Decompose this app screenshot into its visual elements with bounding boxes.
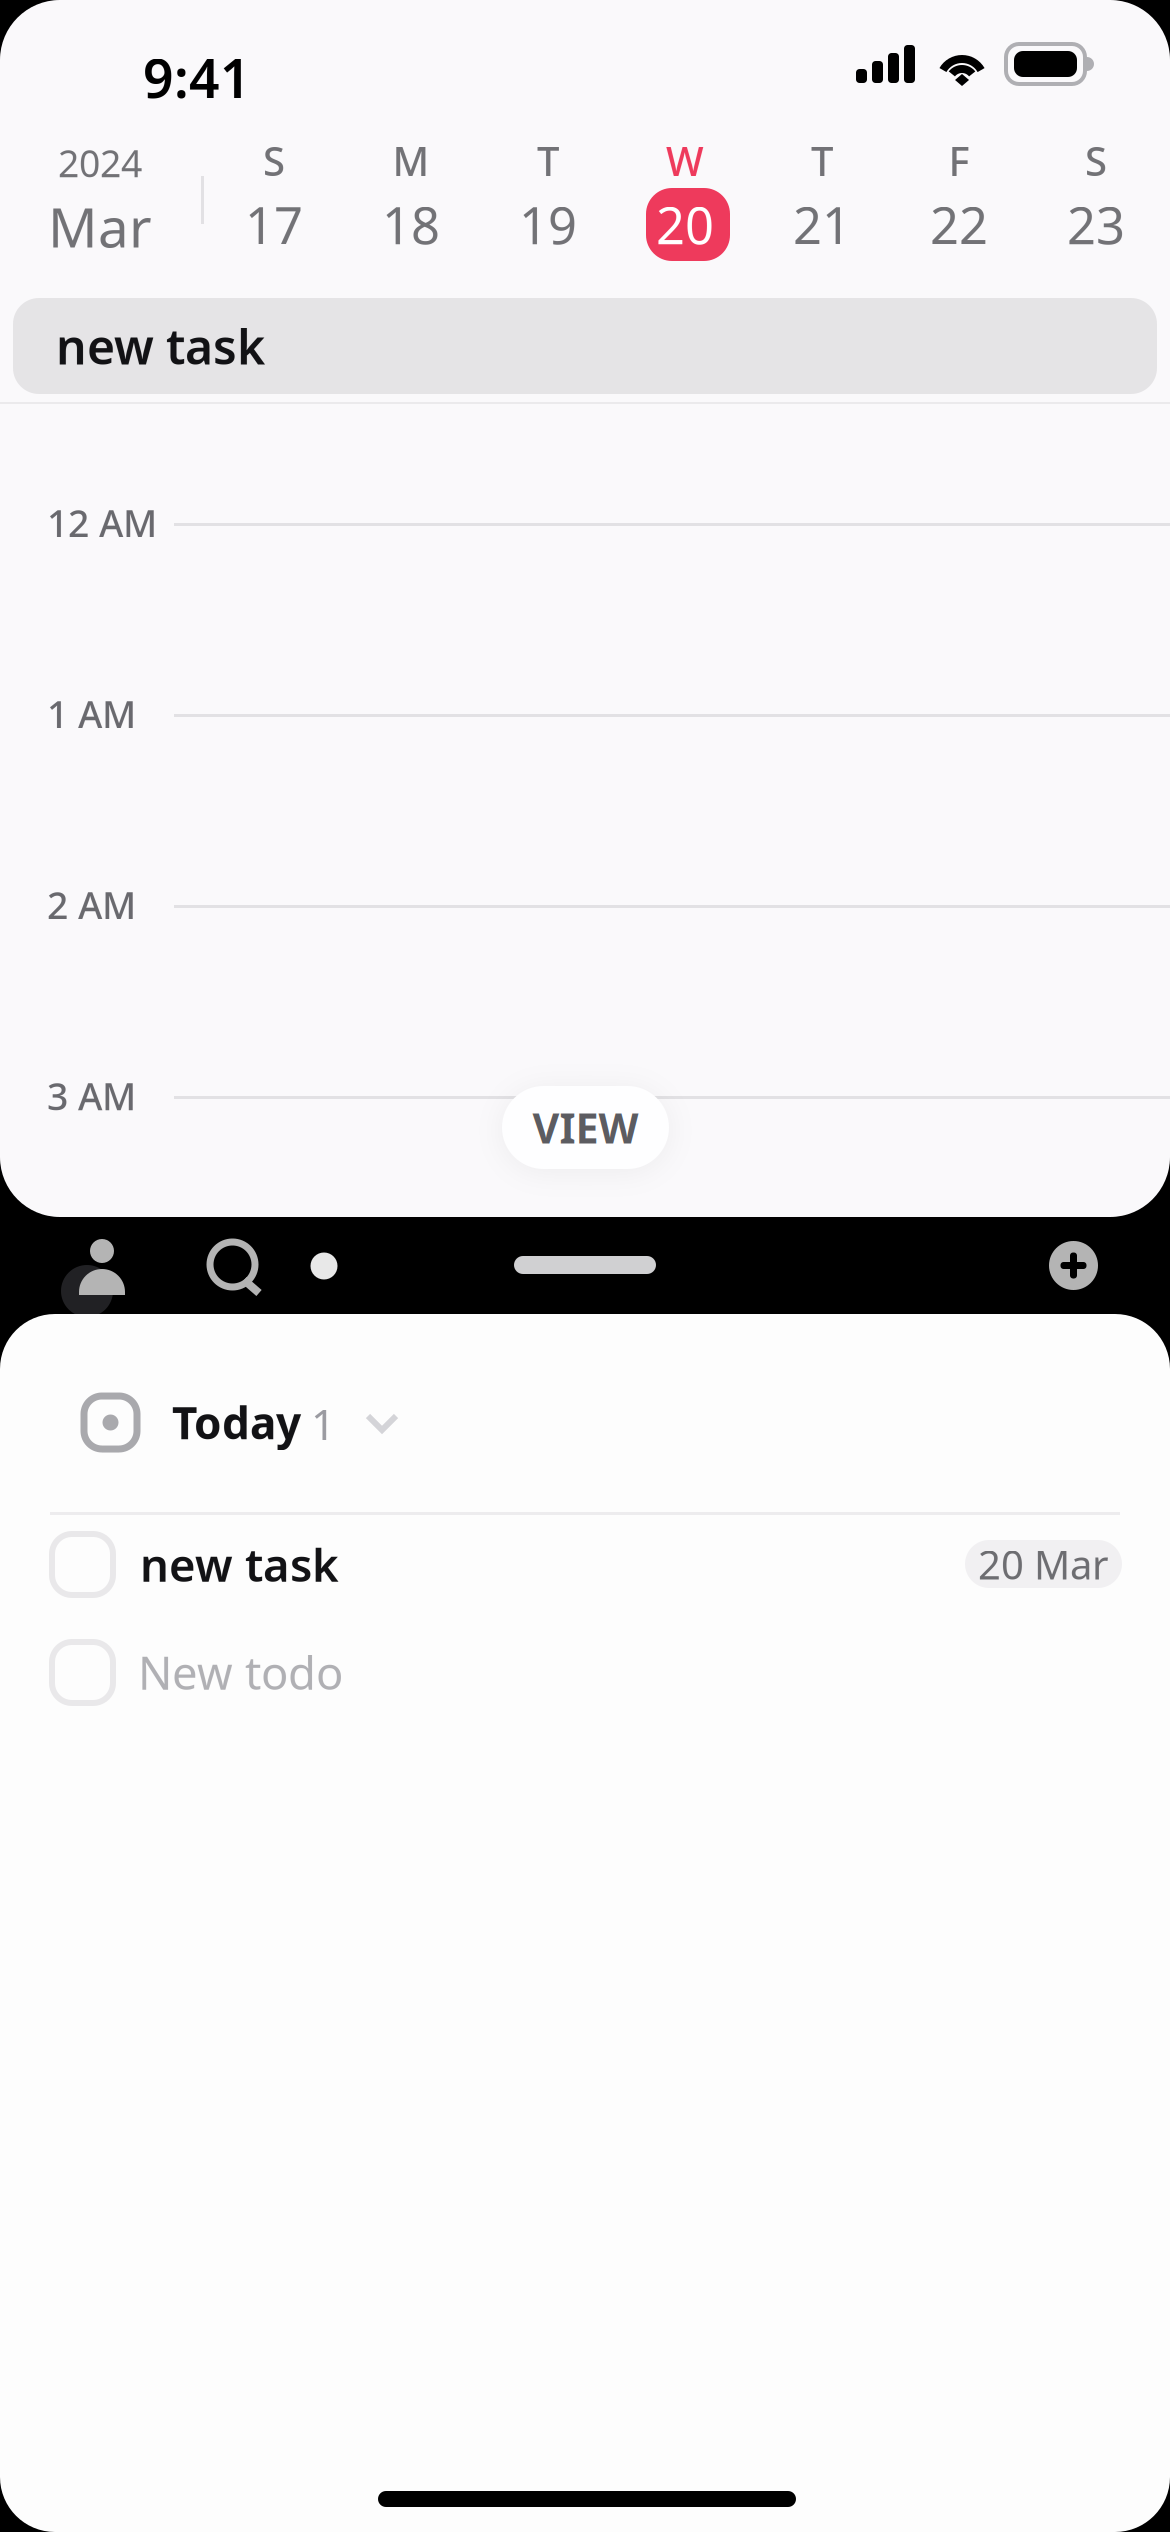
staticText: 12 AM bbox=[47, 498, 157, 548]
staticText: VIEW bbox=[532, 1100, 638, 1155]
button[interactable]: S bbox=[205, 138, 342, 268]
button[interactable]: VIEW bbox=[502, 1086, 669, 1169]
staticText: 23 bbox=[1067, 191, 1125, 258]
staticText: M bbox=[392, 134, 429, 187]
staticText: 22 bbox=[930, 191, 988, 258]
staticText: S bbox=[263, 134, 285, 187]
staticText: 18 bbox=[382, 191, 440, 258]
button[interactable]: F bbox=[890, 138, 1027, 268]
staticText: New todo bbox=[138, 1642, 343, 1702]
staticText: T bbox=[537, 134, 559, 187]
staticText: T bbox=[811, 134, 833, 187]
button[interactable]: S bbox=[1027, 138, 1164, 268]
button[interactable]: Add bbox=[1049, 1241, 1098, 1290]
staticText: F bbox=[948, 134, 969, 187]
staticText: S bbox=[1085, 134, 1107, 187]
staticText: 2 AM bbox=[47, 880, 136, 930]
button[interactable]: new task bbox=[13, 298, 1157, 394]
staticText: 20 Mar bbox=[978, 1537, 1109, 1590]
staticText: 20 bbox=[656, 191, 714, 258]
staticText: 17 bbox=[245, 191, 303, 258]
button[interactable]: M bbox=[342, 138, 479, 268]
button[interactable]: Now playing bbox=[310, 1252, 338, 1280]
staticText: W bbox=[666, 134, 704, 187]
staticText: 1 bbox=[311, 1395, 335, 1452]
button[interactable]: T bbox=[479, 138, 616, 268]
staticText: 9:41 bbox=[143, 42, 251, 113]
staticText: 1 AM bbox=[47, 689, 136, 739]
button[interactable]: Search bbox=[210, 1242, 264, 1296]
button[interactable]: New todo bbox=[0, 1617, 1170, 1725]
button[interactable]: 2024 bbox=[26, 138, 174, 268]
staticText: 19 bbox=[519, 191, 577, 258]
staticText: 2024 bbox=[58, 138, 142, 188]
button[interactable]: Today bbox=[0, 1314, 1170, 1512]
button[interactable]: new task bbox=[0, 1509, 1170, 1617]
staticText: 3 AM bbox=[47, 1071, 136, 1121]
staticText: Today bbox=[172, 1393, 301, 1451]
staticText: new task bbox=[140, 1534, 339, 1594]
staticText: new task bbox=[56, 314, 265, 378]
button[interactable]: Account bbox=[79, 1239, 126, 1295]
staticText: 21 bbox=[793, 191, 851, 258]
button[interactable]: W bbox=[616, 138, 753, 268]
staticText: Mar bbox=[48, 190, 152, 263]
button[interactable]: T bbox=[753, 138, 890, 268]
